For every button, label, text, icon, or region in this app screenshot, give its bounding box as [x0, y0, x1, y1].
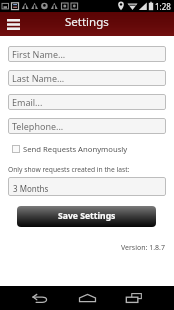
button[interactable]: First Name... [8, 46, 166, 62]
staticText: Version: 1.8.7 [0, 243, 165, 253]
button[interactable]: Email... [8, 94, 166, 110]
staticText: 3 Months [13, 183, 49, 194]
button[interactable]: Save Settings [17, 206, 156, 227]
button[interactable]: Telephone... [8, 118, 166, 134]
staticText: Settings [65, 14, 109, 30]
button[interactable]: 3 Months [8, 177, 166, 196]
button[interactable]: Menu [7, 19, 20, 30]
button[interactable]: Send Requests Anonymously [12, 142, 128, 156]
staticText: Send Requests Anonymously [23, 144, 128, 154]
staticText: Only show requests created in the last: [8, 165, 130, 174]
button[interactable]: Last Name... [8, 70, 166, 86]
button[interactable]: Back [26, 286, 52, 310]
staticText: Last Name... [12, 72, 65, 84]
staticText: Save Settings [58, 210, 116, 222]
button[interactable]: Home [74, 286, 100, 310]
staticText: Email... [12, 96, 43, 108]
staticText: First Name... [12, 48, 66, 60]
button[interactable]: Recents [121, 286, 147, 310]
staticText: Telephone... [12, 120, 64, 132]
staticText: 1:28 [155, 1, 171, 12]
